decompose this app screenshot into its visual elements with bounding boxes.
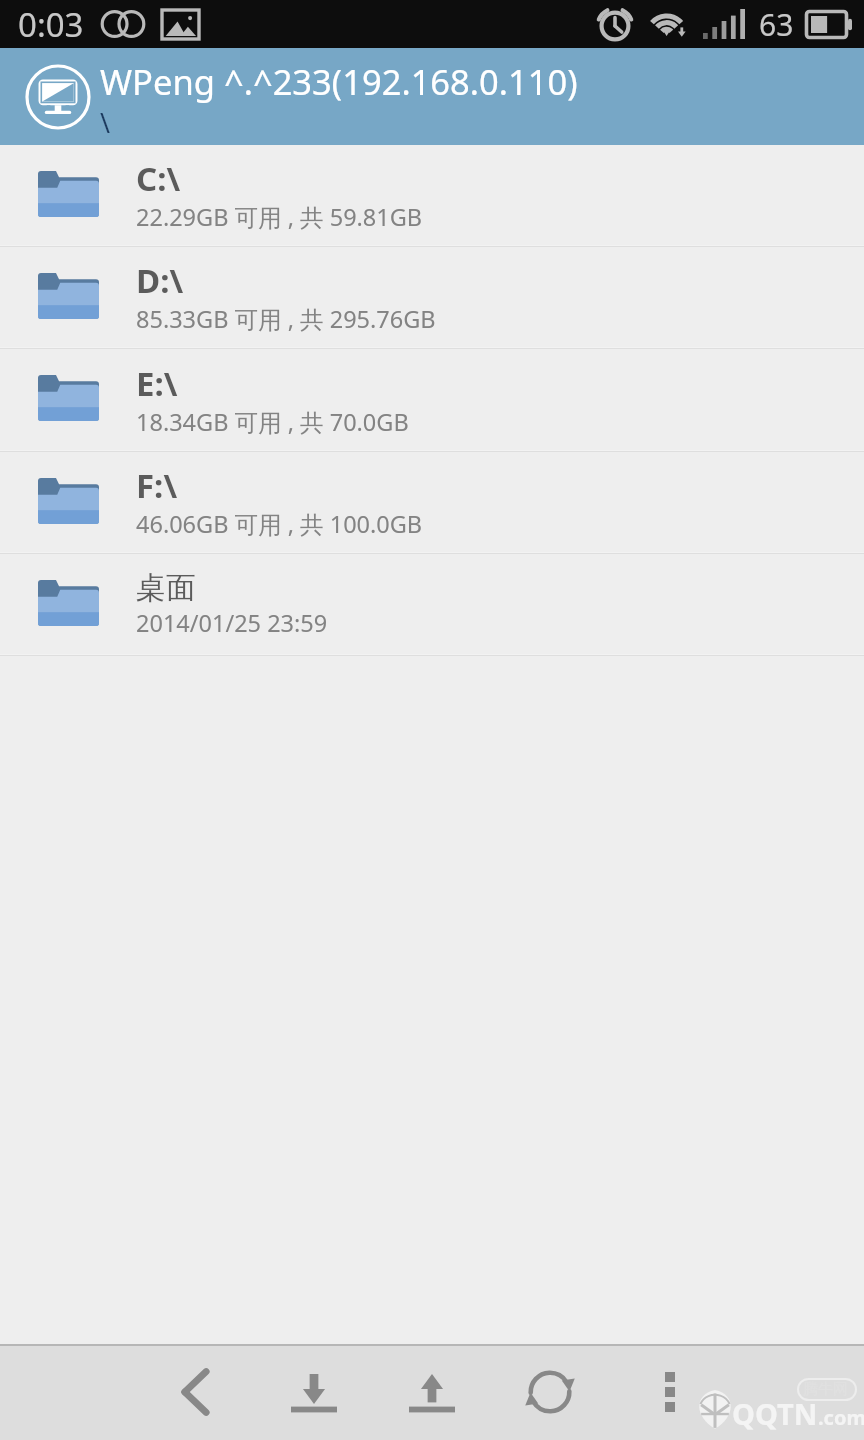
staticText: 63 [759,4,794,45]
staticText: .com [818,1404,864,1431]
button[interactable]: Download [267,1344,361,1440]
button[interactable]: F:\ [0,452,864,554]
staticText: QQTN [732,1394,818,1433]
button[interactable]: More options [623,1344,717,1440]
staticText: 2014/01/25 23:59 [136,607,328,639]
staticText: 18.34GB 可用 , 共 70.0GB [136,406,409,438]
button[interactable]: E:\ [0,349,864,452]
staticText: 0:03 [18,2,84,47]
staticText: D:\ [136,258,184,303]
button[interactable]: C:\ [0,145,864,247]
staticText: E:\ [136,361,178,406]
staticText: \ [100,104,111,141]
staticText: 85.33GB 可用 , 共 295.76GB [136,303,436,335]
button[interactable]: WPeng ^.^233(192.168.0.110) [0,48,864,145]
button[interactable]: D:\ [0,247,864,349]
staticText: 22.29GB 可用 , 共 59.81GB [136,201,423,233]
staticText: 46.06GB 可用 , 共 100.0GB [136,508,423,540]
button[interactable]: 桌面 [0,554,864,656]
staticText: 桌面 [136,569,196,607]
staticText: WPeng ^.^233(192.168.0.110) [100,58,578,105]
button[interactable]: Back [149,1344,243,1440]
staticText: F:\ [136,463,178,508]
button[interactable]: Upload [385,1344,479,1440]
staticText: C:\ [136,156,181,201]
button[interactable]: Refresh [503,1344,597,1440]
